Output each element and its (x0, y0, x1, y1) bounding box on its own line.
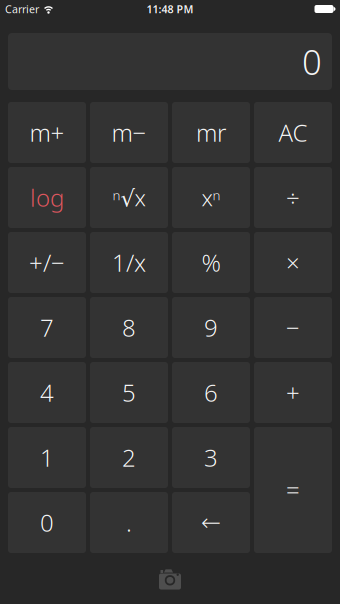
button[interactable]: . (90, 492, 168, 553)
staticText: 1 (40, 442, 54, 473)
button[interactable]: m+ (8, 102, 86, 163)
staticText: % (201, 247, 220, 278)
button[interactable]: 4 (8, 362, 86, 423)
button[interactable]: log (8, 167, 86, 228)
button[interactable]: 8 (90, 297, 168, 358)
button[interactable]: ← (172, 492, 250, 553)
button[interactable]: n√x (90, 167, 168, 228)
button[interactable]: 5 (90, 362, 168, 423)
staticText: ← (201, 509, 221, 536)
staticText: 6 (204, 377, 218, 408)
button[interactable]: % (172, 232, 250, 293)
staticText: 7 (40, 312, 54, 343)
button[interactable]: 0 (8, 492, 86, 553)
staticText: × (286, 247, 300, 278)
button[interactable]: ÷ (254, 167, 332, 228)
button[interactable]: 6 (172, 362, 250, 423)
button[interactable]: Camera (140, 556, 200, 600)
button[interactable]: 1 (8, 427, 86, 488)
staticText: + (286, 377, 300, 408)
staticText: 11:48 PM (146, 2, 193, 16)
button[interactable]: AC (254, 102, 332, 163)
staticText: 9 (204, 312, 218, 343)
button[interactable]: − (254, 297, 332, 358)
button[interactable]: mr (172, 102, 250, 163)
staticText: xn (201, 182, 220, 212)
staticText: 0 (40, 507, 54, 538)
button[interactable]: = (254, 427, 332, 553)
button[interactable]: 3 (172, 427, 250, 488)
staticText: m+ (29, 117, 64, 148)
staticText: mr (196, 117, 226, 148)
button[interactable]: 1/x (90, 232, 168, 293)
staticText: − (286, 312, 300, 343)
button[interactable]: + (254, 362, 332, 423)
staticText: 3 (204, 442, 218, 473)
staticText: . (126, 507, 132, 538)
staticText: +/− (29, 247, 65, 278)
staticText: n√x (112, 182, 145, 212)
staticText: 5 (122, 377, 136, 408)
button[interactable]: × (254, 232, 332, 293)
staticText: 2 (122, 442, 136, 473)
staticText: 8 (122, 312, 136, 343)
staticText: 4 (40, 377, 54, 408)
button[interactable]: 7 (8, 297, 86, 358)
staticText: log (30, 182, 64, 213)
staticText: m− (111, 117, 146, 148)
button[interactable]: 2 (90, 427, 168, 488)
staticText: ÷ (286, 182, 300, 213)
button[interactable]: 9 (172, 297, 250, 358)
staticText: = (286, 474, 300, 506)
button[interactable]: +/− (8, 232, 86, 293)
staticText: 0 (302, 38, 322, 84)
button[interactable]: m− (90, 102, 168, 163)
staticText: 1/x (112, 247, 146, 278)
staticText: Carrier (5, 2, 39, 16)
button[interactable]: xn (172, 167, 250, 228)
staticText: AC (278, 117, 307, 148)
